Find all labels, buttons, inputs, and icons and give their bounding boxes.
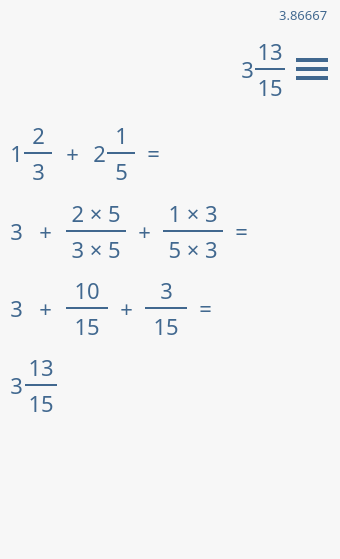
staticText: + bbox=[39, 293, 52, 323]
button[interactable]: 1 bbox=[10, 114, 340, 191]
staticText: 2 × 5 bbox=[71, 198, 121, 228]
staticText: 10 bbox=[74, 275, 100, 305]
staticText: 13 bbox=[257, 36, 283, 66]
staticText: + bbox=[39, 216, 52, 246]
staticText: 3 bbox=[32, 156, 45, 186]
button[interactable]: 3 bbox=[10, 192, 340, 269]
staticText: 1 bbox=[10, 138, 23, 168]
staticText: 3 × 5 bbox=[71, 234, 121, 264]
staticText: = bbox=[147, 138, 160, 168]
staticText: = bbox=[235, 216, 248, 246]
staticText: 3 bbox=[241, 54, 254, 84]
staticText: 15 bbox=[257, 72, 283, 102]
button[interactable]: 3 bbox=[10, 346, 340, 423]
button[interactable]: Menu bbox=[294, 53, 330, 85]
staticText: 3 bbox=[10, 370, 23, 400]
staticText: 3 bbox=[160, 275, 173, 305]
staticText: 13 bbox=[28, 352, 54, 382]
button[interactable]: 3 bbox=[241, 36, 285, 102]
staticText: 1 bbox=[115, 120, 128, 150]
staticText: 2 bbox=[93, 138, 106, 168]
staticText: 3 bbox=[10, 293, 23, 323]
staticText: + bbox=[138, 216, 151, 246]
staticText: 3.86667 bbox=[279, 6, 328, 24]
staticText: + bbox=[66, 138, 79, 168]
staticText: 15 bbox=[28, 388, 54, 418]
staticText: 5 bbox=[115, 156, 128, 186]
staticText: + bbox=[120, 293, 133, 323]
button[interactable]: 3 bbox=[10, 269, 340, 346]
staticText: 1 × 3 bbox=[168, 198, 218, 228]
staticText: 3 bbox=[10, 216, 23, 246]
staticText: = bbox=[199, 293, 212, 323]
button[interactable]: 3.86667 bbox=[279, 6, 328, 24]
staticText: 15 bbox=[153, 311, 179, 341]
staticText: 15 bbox=[74, 311, 100, 341]
staticText: 2 bbox=[32, 120, 45, 150]
staticText: 5 × 3 bbox=[168, 234, 218, 264]
